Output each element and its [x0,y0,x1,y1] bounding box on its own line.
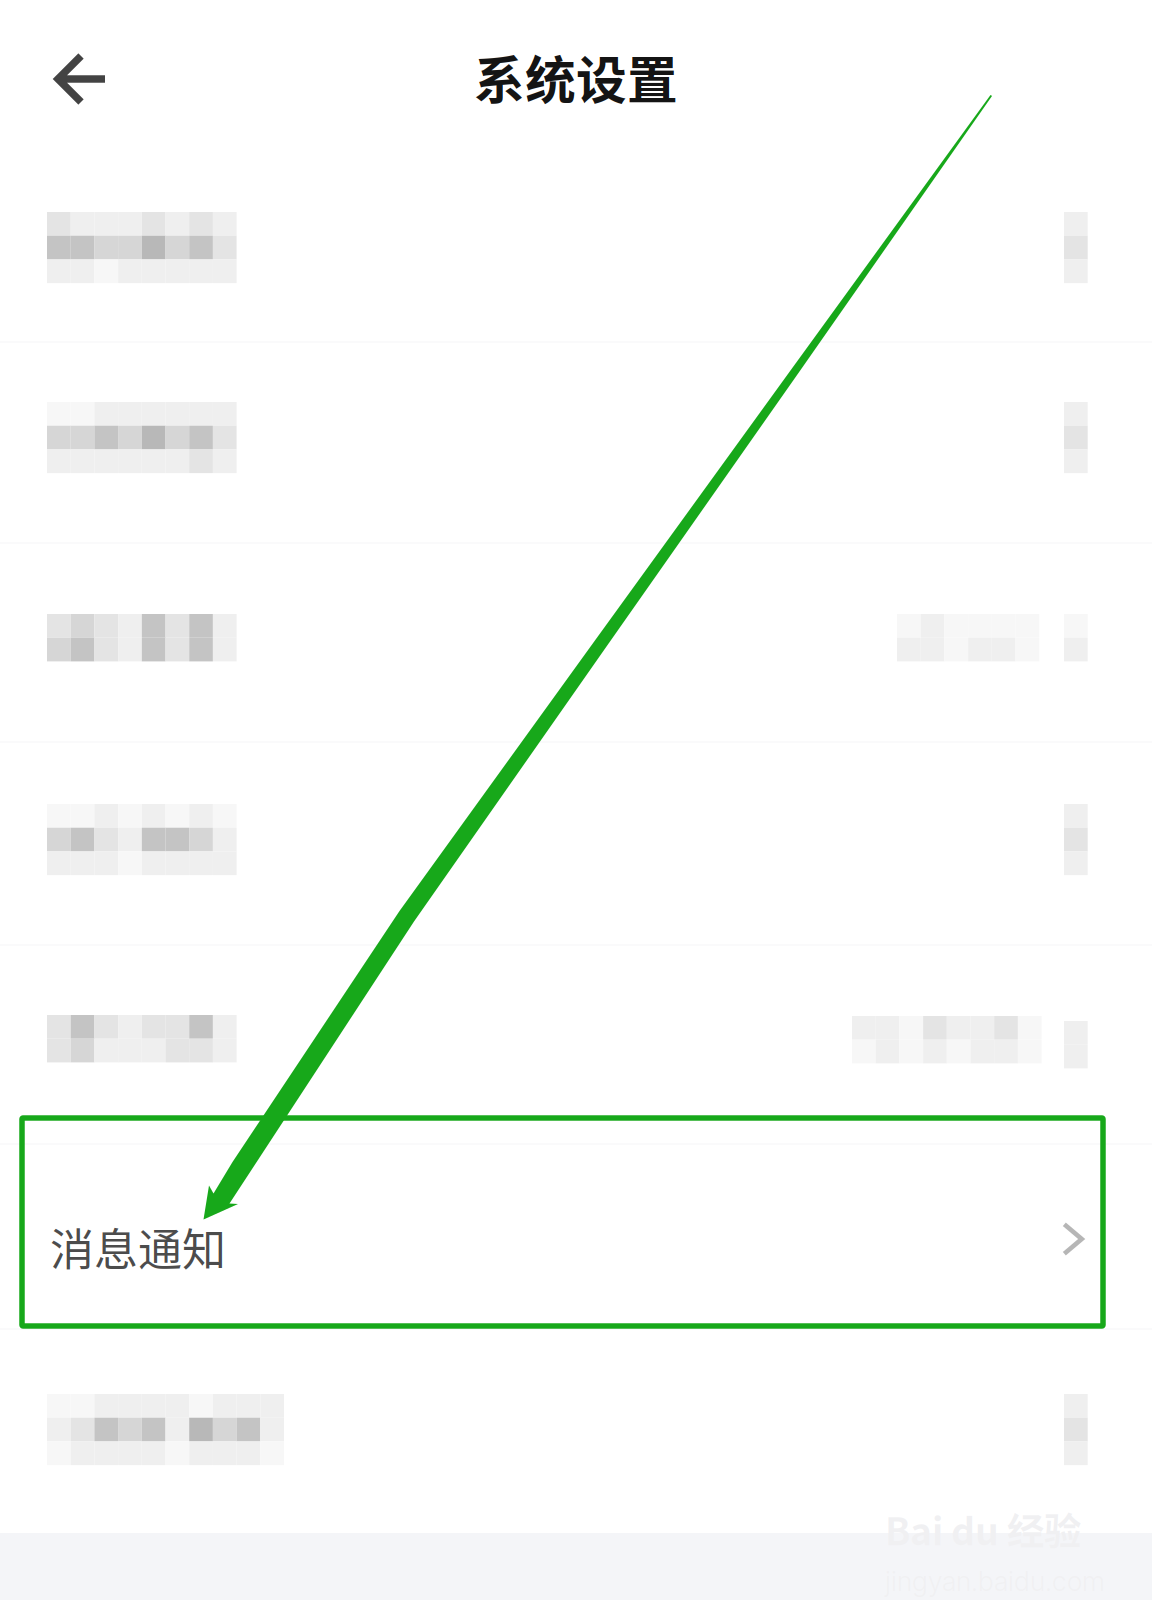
button[interactable] [0,343,1152,542]
staticText: Bai du 经验 [885,1502,1081,1556]
button[interactable]: 返回 [30,28,134,132]
staticText: 消息通知 [50,1215,226,1279]
button[interactable] [0,142,1152,341]
staticText: 系统设置 [474,40,678,114]
button[interactable] [0,946,1152,1143]
button[interactable] [0,743,1152,944]
button[interactable] [0,544,1152,741]
button[interactable] [0,1330,1152,1533]
button[interactable]: 消息通知 [0,1145,1152,1328]
